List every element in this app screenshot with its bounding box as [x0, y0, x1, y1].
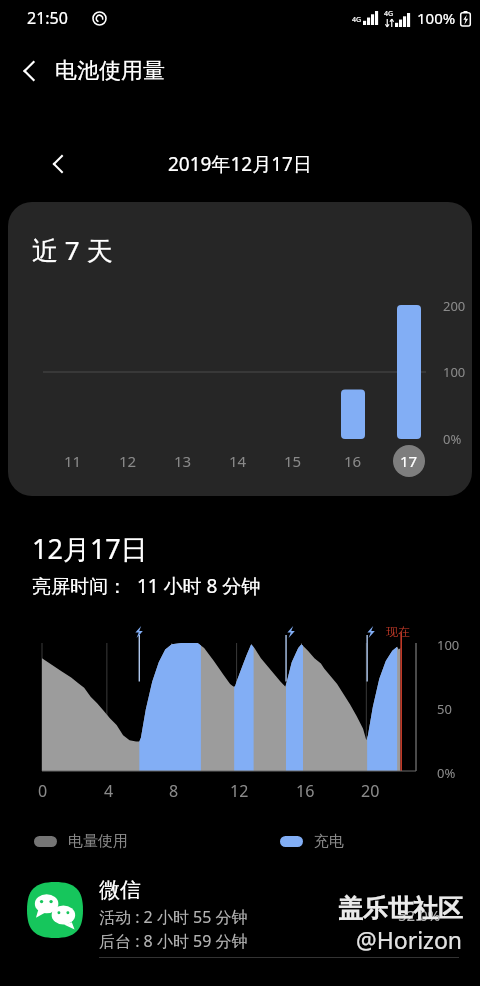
staticText: 16 [344, 451, 362, 471]
staticText: 亮屏时间： 11 小时 8 分钟 [32, 573, 261, 599]
staticText: 活动 : 2 小时 55 分钟 [99, 906, 248, 928]
staticText: 0% [443, 430, 462, 448]
staticText: 52.0% [398, 905, 441, 925]
button[interactable]: 电量使用 [34, 832, 128, 851]
staticText: 100% [417, 8, 456, 28]
staticText: 16 [296, 780, 315, 802]
staticText: 20 [361, 780, 380, 802]
staticText: 12月17日 [32, 530, 148, 567]
staticText: 21:50 [27, 7, 68, 29]
button[interactable]: 12 [112, 445, 144, 477]
button[interactable]: 16 [337, 445, 369, 477]
staticText: 17 [400, 451, 418, 471]
staticText: 14 [229, 451, 247, 471]
staticText: 100 [437, 636, 460, 654]
button[interactable]: 近 7 天 [8, 202, 472, 496]
button[interactable]: 17 [393, 445, 425, 477]
button[interactable]: 14 [222, 445, 254, 477]
button[interactable]: 15 [277, 445, 309, 477]
staticText: 4G [352, 15, 362, 25]
staticText: @Horizon [356, 924, 463, 955]
button[interactable]: Previous day [32, 141, 78, 187]
staticText: 现在 [386, 624, 410, 639]
staticText: 4G [384, 9, 394, 19]
button[interactable]: 充电 [280, 832, 344, 851]
staticText: 近 7 天 [32, 232, 113, 268]
staticText: 50 [437, 700, 452, 718]
staticText: 微信 [99, 877, 141, 903]
staticText: 4 [104, 780, 114, 802]
staticText: 100 [443, 363, 466, 381]
staticText: 2019年12月17日 [168, 151, 312, 177]
staticText: 盖乐世社区 [338, 893, 463, 924]
staticText: 12 [230, 780, 249, 802]
staticText: 后台 : 8 小时 59 分钟 [99, 930, 248, 952]
staticText: 200 [443, 297, 466, 315]
staticText: 13 [174, 451, 192, 471]
staticText: 12 [119, 451, 137, 471]
staticText: 电池使用量 [55, 57, 165, 85]
staticText: 电量使用 [68, 832, 128, 851]
button[interactable]: Back [0, 45, 52, 97]
staticText: 11 [64, 451, 82, 471]
button[interactable]: 11 [57, 445, 89, 477]
button[interactable]: 微信 [0, 872, 480, 962]
staticText: 15 [284, 451, 302, 471]
staticText: 8 [169, 780, 179, 802]
staticText: 0% [437, 764, 456, 782]
staticText: 0 [38, 780, 48, 802]
staticText: 充电 [314, 832, 344, 851]
button[interactable]: 13 [167, 445, 199, 477]
